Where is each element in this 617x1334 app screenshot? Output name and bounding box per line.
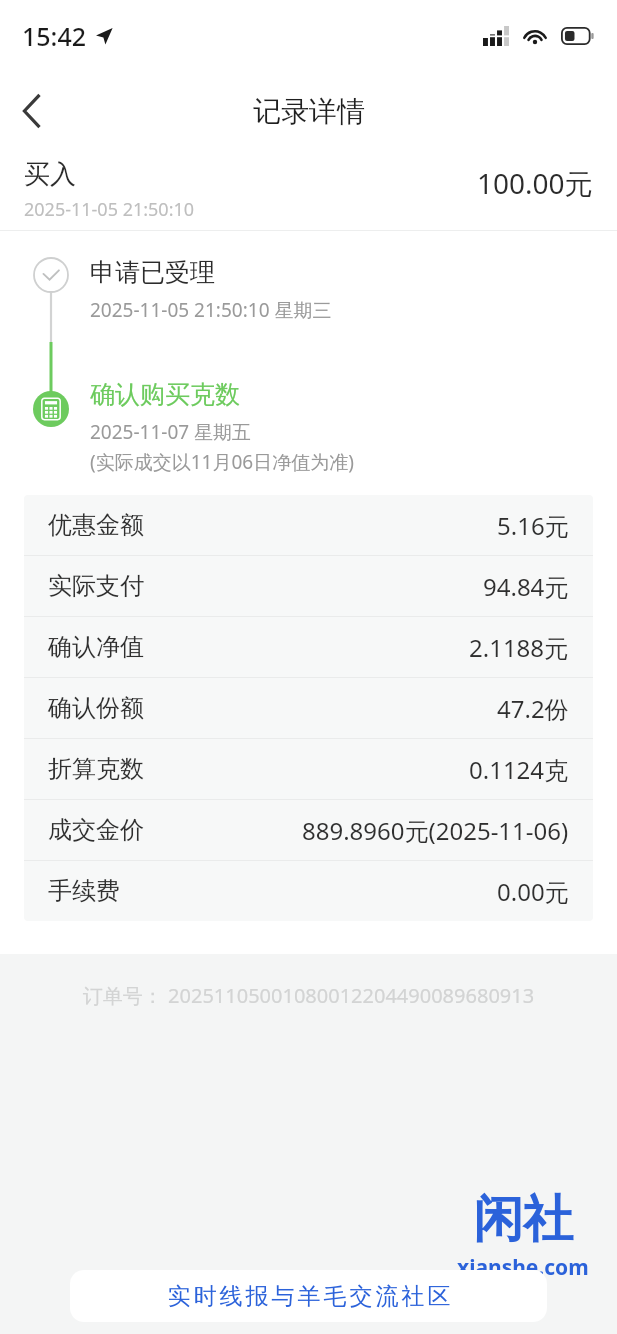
staticText: 100.00元 (477, 164, 593, 202)
staticText: 2025-11-05 21:50:10 (24, 197, 195, 222)
staticText: 889.8960元(2025-11-06) (302, 814, 569, 847)
staticText: 记录详情 (253, 94, 365, 129)
button[interactable]: 实际支付 (24, 556, 593, 616)
button[interactable]: 手续费 (24, 861, 593, 921)
button[interactable]: 确认份额 (24, 678, 593, 738)
staticText: 手续费 (48, 876, 120, 906)
staticText: 闲社 (473, 1188, 573, 1251)
staticText: 2025-11-05 21:50:10 星期三 (90, 297, 332, 323)
staticText: 2.1188元 (469, 631, 569, 664)
staticText: 94.84元 (483, 570, 569, 603)
staticText: 订单号： 20251105001080012204490089680913 (0, 982, 617, 1009)
button[interactable]: Back (0, 79, 64, 143)
staticText: 实时线报与羊毛交流社区 (166, 1282, 452, 1311)
staticText: 确认购买克数 (90, 379, 240, 410)
staticText: (实际成交以11月06日净值为准) (90, 449, 354, 475)
button[interactable]: 实时线报与羊毛交流社区 (70, 1270, 547, 1322)
staticText: 确认份额 (48, 693, 144, 723)
staticText: 2025-11-07 星期五 (90, 419, 252, 445)
staticText: 申请已受理 (90, 257, 215, 288)
button[interactable]: 买入 (0, 150, 617, 230)
button[interactable]: 成交金价 (24, 800, 593, 860)
staticText: 0.00元 (497, 875, 569, 908)
staticText: 5.16元 (497, 509, 569, 542)
staticText: 成交金价 (48, 815, 144, 845)
staticText: 0.1124克 (469, 753, 569, 786)
staticText: 47.2份 (497, 692, 569, 725)
button[interactable]: 确认净值 (24, 617, 593, 677)
button[interactable]: 折算克数 (24, 739, 593, 799)
staticText: 15:42 (22, 19, 87, 53)
staticText: xianshe.com (457, 1253, 589, 1282)
staticText: 优惠金额 (48, 510, 144, 540)
staticText: 买入 (24, 158, 76, 191)
staticText: 确认净值 (48, 632, 144, 662)
button[interactable]: 优惠金额 (24, 495, 593, 555)
staticText: 折算克数 (48, 754, 144, 784)
staticText: 实际支付 (48, 571, 144, 601)
